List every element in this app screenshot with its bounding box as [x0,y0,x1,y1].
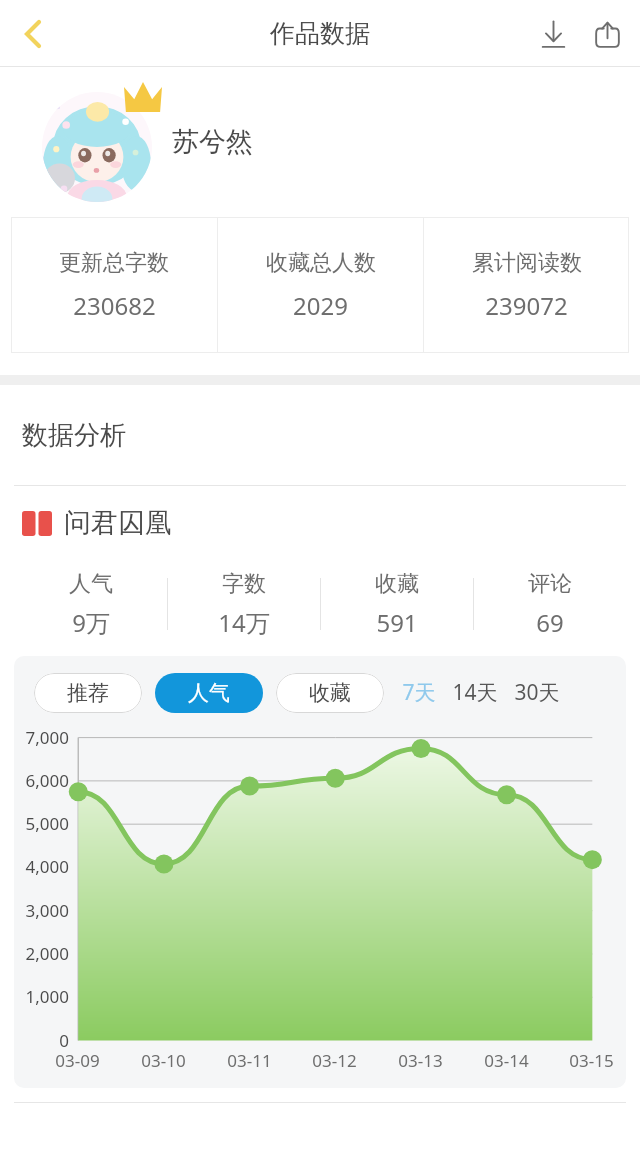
staticText: 03-14 [484,1049,529,1072]
button[interactable]: 评论 [474,560,626,648]
staticText: 9万 [72,606,110,639]
staticText: 30天 [514,678,560,707]
staticText: 人气 [69,570,113,598]
staticText: 收藏 [375,570,419,598]
button[interactable]: 人气 [14,560,167,648]
button[interactable]: 收藏总人数 [218,217,423,353]
staticText: 03-12 [312,1049,357,1072]
staticText: 03-10 [141,1049,186,1072]
staticText: 3,000 [25,899,69,922]
staticText: 苏兮然 [172,125,253,159]
staticText: 人气 [188,680,230,706]
staticText: 03-11 [227,1049,272,1072]
button[interactable]: Share [580,7,634,61]
staticText: 2,000 [25,942,69,965]
staticText: 2029 [293,289,348,322]
staticText: 推荐 [67,680,109,706]
staticText: 4,000 [25,855,69,878]
staticText: 字数 [222,570,266,598]
staticText: 7,000 [25,726,69,749]
staticText: 更新总字数 [59,249,169,277]
staticText: 03-13 [398,1049,443,1072]
button[interactable]: 人气 [155,673,263,713]
staticText: 数据分析 [22,419,126,452]
staticText: 14万 [218,606,270,639]
staticText: 收藏 [309,680,351,706]
staticText: 69 [536,606,564,639]
button[interactable]: 14天 [450,672,500,713]
button[interactable]: 30天 [512,672,562,713]
staticText: 03-15 [569,1049,614,1072]
button[interactable]: Download [526,7,580,61]
button[interactable]: 字数 [168,560,320,648]
button[interactable]: 苏兮然 [0,67,640,217]
staticText: 591 [376,606,418,639]
button[interactable]: 推荐 [34,673,142,713]
staticText: 7天 [402,678,436,707]
staticText: 14天 [452,678,498,707]
staticText: 作品数据 [270,18,370,49]
staticText: 收藏总人数 [266,249,376,277]
staticText: 03-09 [55,1049,100,1072]
staticText: 6,000 [25,769,69,792]
staticText: 5,000 [25,812,69,835]
staticText: 评论 [528,570,572,598]
staticText: 1,000 [25,985,69,1008]
button[interactable]: 问君囚凰 [22,486,640,560]
staticText: 累计阅读数 [472,249,582,277]
button[interactable]: 7天 [400,672,438,713]
button[interactable]: 累计阅读数 [424,217,629,353]
button[interactable]: 收藏 [321,560,473,648]
staticText: 问君囚凰 [64,506,172,540]
button[interactable]: 更新总字数 [11,217,217,353]
button[interactable]: 收藏 [276,673,384,713]
staticText: 0 [59,1029,69,1052]
staticText: 230682 [73,289,156,322]
button[interactable]: Back [4,5,62,63]
staticText: 239072 [485,289,568,322]
